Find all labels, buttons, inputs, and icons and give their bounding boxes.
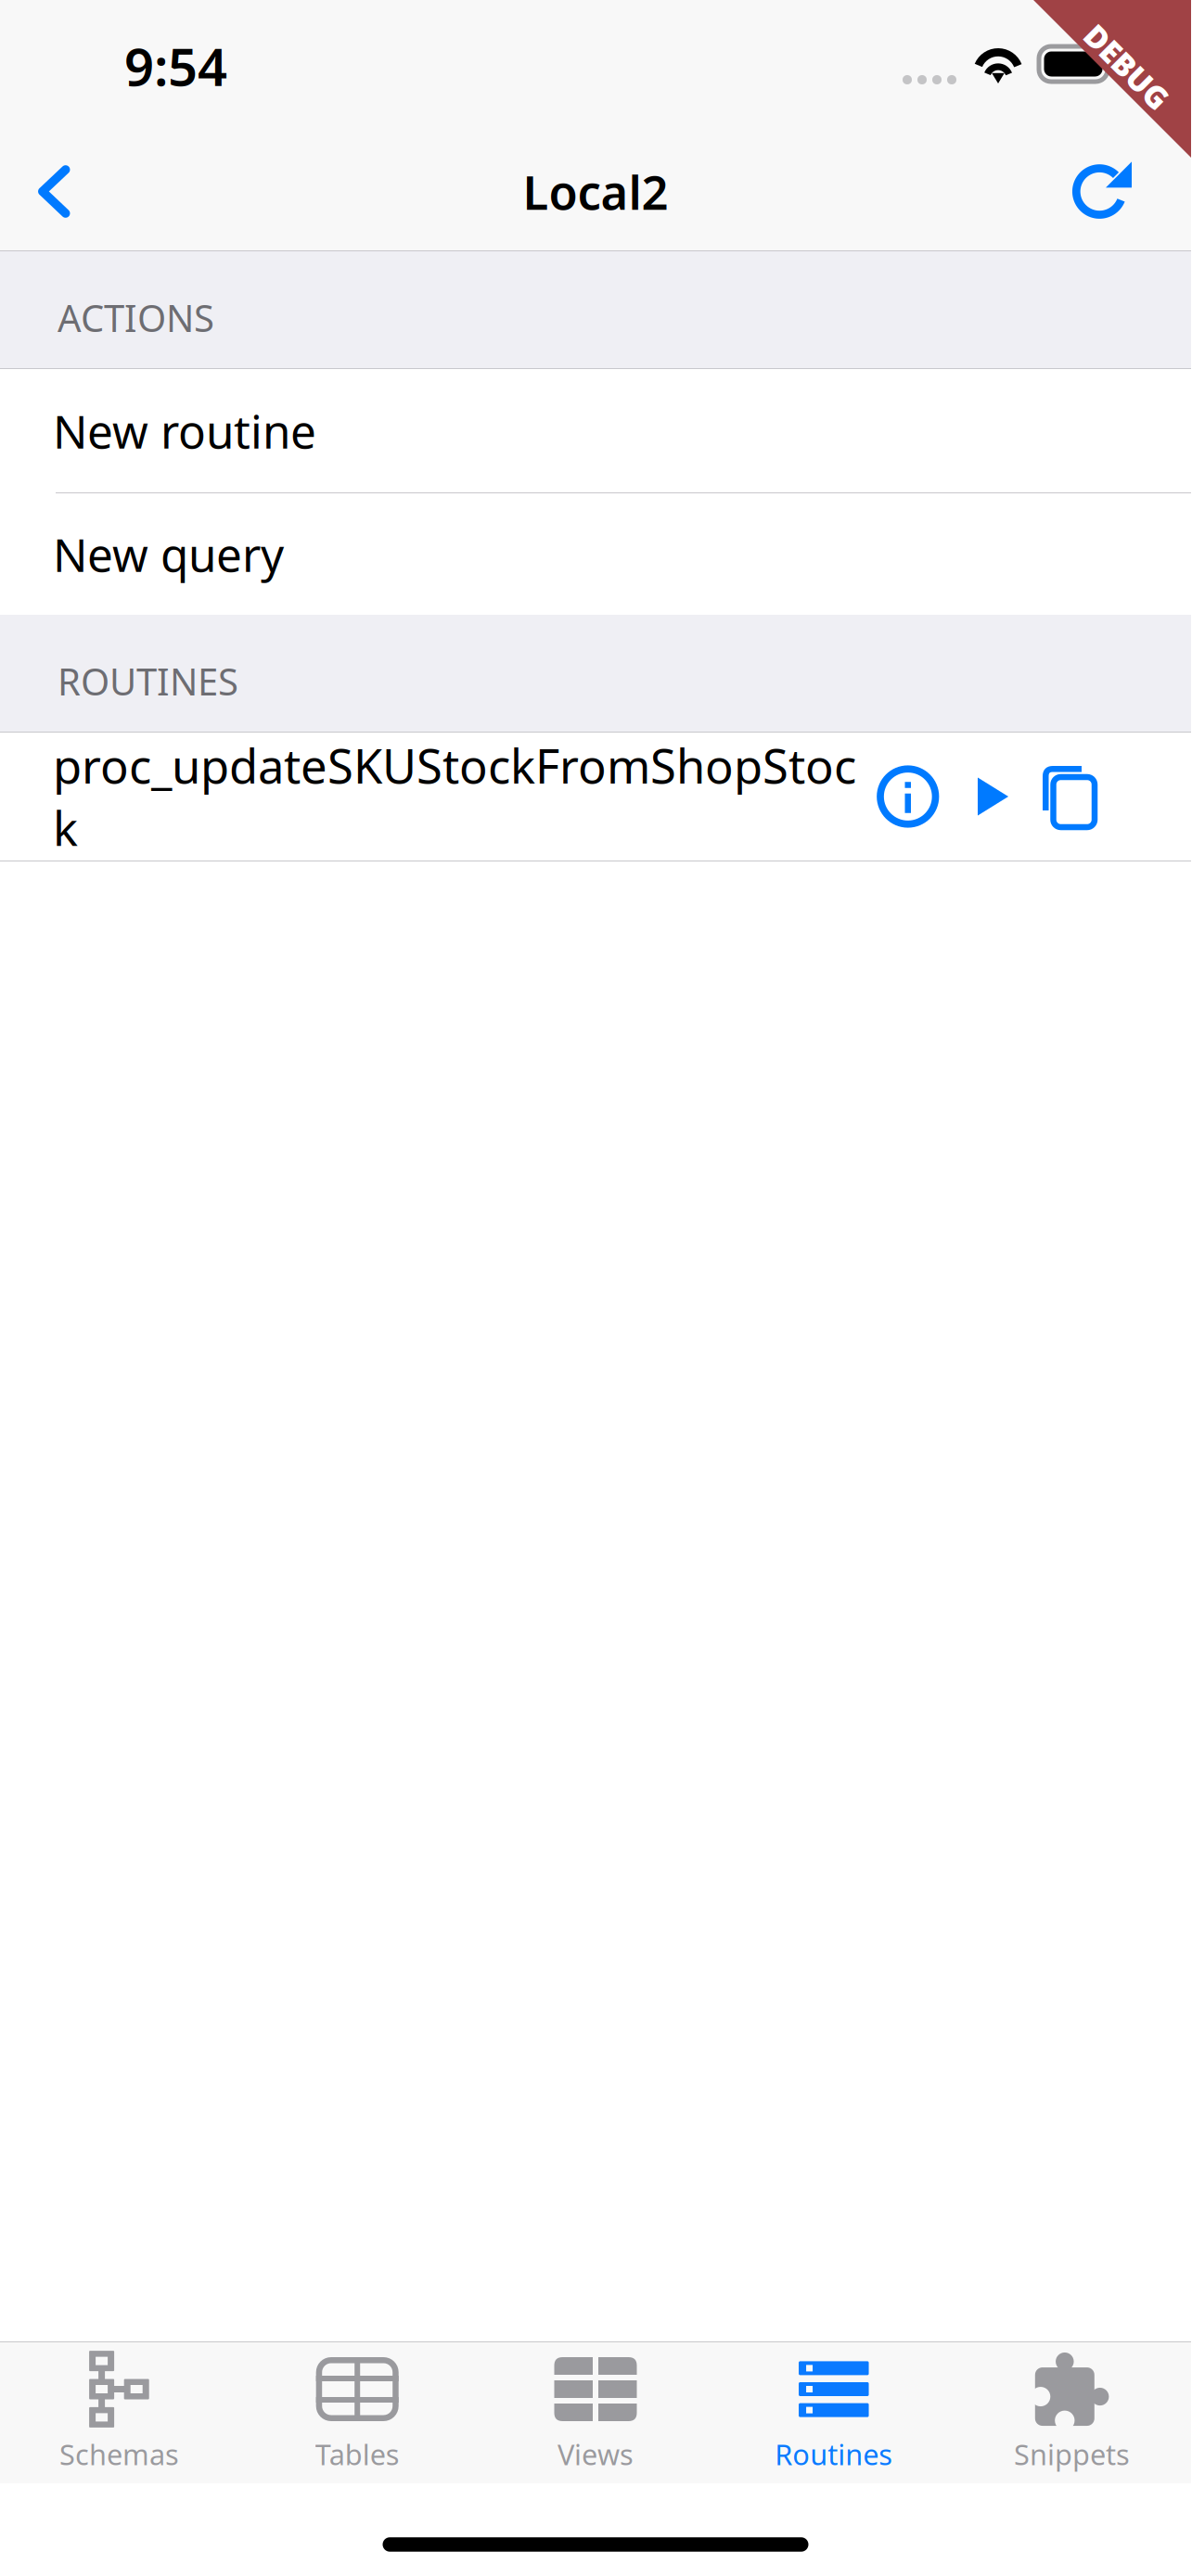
button[interactable]: Refresh	[1043, 132, 1191, 251]
staticText: ACTIONS	[58, 293, 214, 342]
button[interactable]: Routines	[715, 2342, 953, 2483]
button[interactable]: Views	[476, 2342, 715, 2483]
staticText: Snippets	[1014, 2435, 1130, 2473]
button[interactable]: New query	[0, 493, 1191, 615]
staticText: DEBUG	[1074, 46, 1180, 87]
staticText: ROUTINES	[58, 656, 238, 706]
button[interactable]: proc_updateSKUStockFromShopStoc	[0, 733, 1191, 861]
button[interactable]: Snippets	[953, 2342, 1191, 2483]
staticText: Schemas	[59, 2435, 179, 2473]
button[interactable]: New routine	[0, 369, 1191, 492]
staticText: Tables	[315, 2435, 400, 2473]
button[interactable]: Back	[0, 132, 148, 251]
button[interactable]: Schemas	[0, 2342, 238, 2483]
staticText: proc_updateSKUStockFromShopStoc	[53, 734, 856, 797]
staticText: 9:54	[124, 31, 227, 100]
button[interactable]: Tables	[238, 2342, 476, 2483]
staticText: New query	[53, 524, 284, 584]
staticText: Local2	[523, 160, 668, 223]
staticText: Routines	[775, 2435, 893, 2473]
staticText: Views	[558, 2435, 634, 2473]
staticText: k	[53, 797, 78, 859]
staticText: New routine	[53, 400, 316, 461]
